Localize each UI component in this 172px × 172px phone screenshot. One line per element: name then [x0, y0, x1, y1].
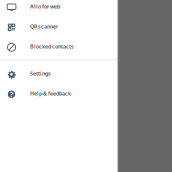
button[interactable]: Settings: [0, 63, 117, 83]
staticText: Blocked contacts: [30, 43, 74, 50]
staticText: QR scanner: [30, 23, 58, 30]
staticText: ?: [10, 90, 13, 99]
button[interactable]: QR scanner: [0, 16, 117, 36]
button[interactable]: Allo for web: [0, 0, 117, 16]
button[interactable]: Close menu: [0, 0, 172, 172]
staticText: Settings: [30, 70, 51, 77]
button[interactable]: Blocked contacts: [0, 36, 117, 56]
staticText: Help & feedback: [30, 90, 71, 97]
button[interactable]: ?: [0, 83, 117, 103]
staticText: Allo for web: [30, 3, 60, 10]
